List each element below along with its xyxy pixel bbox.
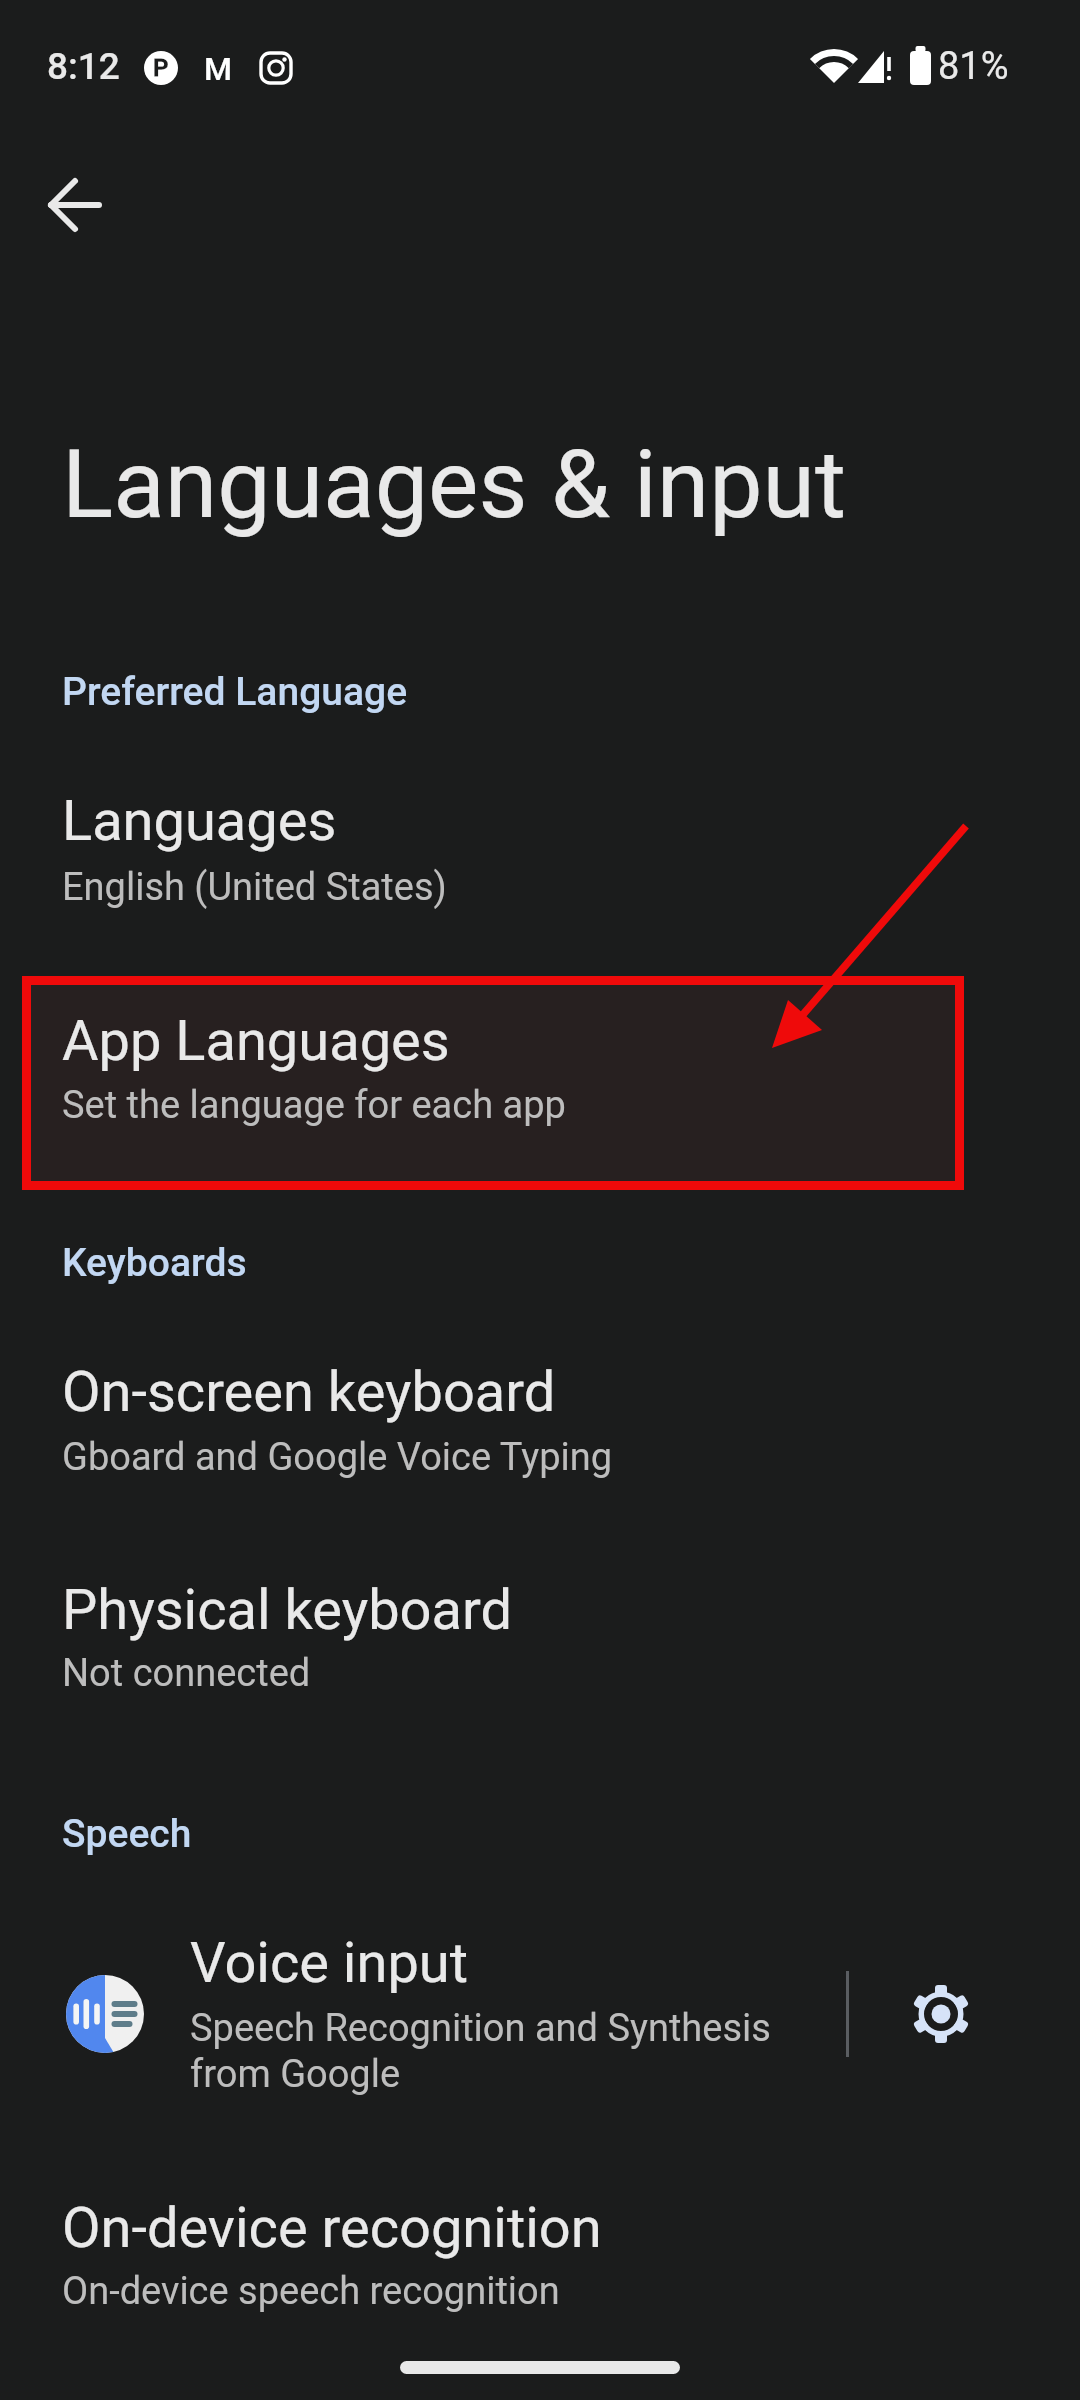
staticText: On-screen keyboard xyxy=(62,1359,556,1425)
staticText: On-device recognition xyxy=(62,2195,602,2261)
staticText: 8:12 xyxy=(47,45,120,88)
staticText: On-device speech recognition xyxy=(62,2269,560,2314)
staticText: Languages xyxy=(62,788,337,854)
staticText: English (United States) xyxy=(62,865,447,910)
staticText: Gboard and Google Voice Typing xyxy=(62,1435,613,1480)
button[interactable]: Voice input xyxy=(0,1915,847,2115)
staticText: 81% xyxy=(938,44,1009,89)
staticText: P xyxy=(153,54,169,82)
button[interactable]: On-device recognition xyxy=(0,2165,1080,2335)
staticText: M xyxy=(204,50,233,86)
staticText: Voice input xyxy=(190,1930,469,1996)
staticText: Physical keyboard xyxy=(62,1577,513,1643)
button[interactable] xyxy=(897,1970,985,2058)
staticText: Keyboards xyxy=(62,1240,247,1286)
staticText: Preferred Language xyxy=(62,669,408,715)
button[interactable]: Languages xyxy=(0,760,1080,920)
staticText: Speech xyxy=(62,1811,192,1857)
button[interactable]: App Languages xyxy=(22,976,964,1190)
staticText: App Languages xyxy=(62,1008,450,1074)
staticText: Languages & input xyxy=(62,429,847,540)
button[interactable] xyxy=(40,170,110,240)
staticText: Set the language for each app xyxy=(62,1083,566,1128)
staticText: Speech Recognition and Synthesis from Go… xyxy=(190,2006,771,2097)
button[interactable]: On-screen keyboard xyxy=(0,1330,1080,1490)
staticText: Not connected xyxy=(62,1651,311,1696)
button[interactable]: Physical keyboard xyxy=(0,1547,1080,1707)
